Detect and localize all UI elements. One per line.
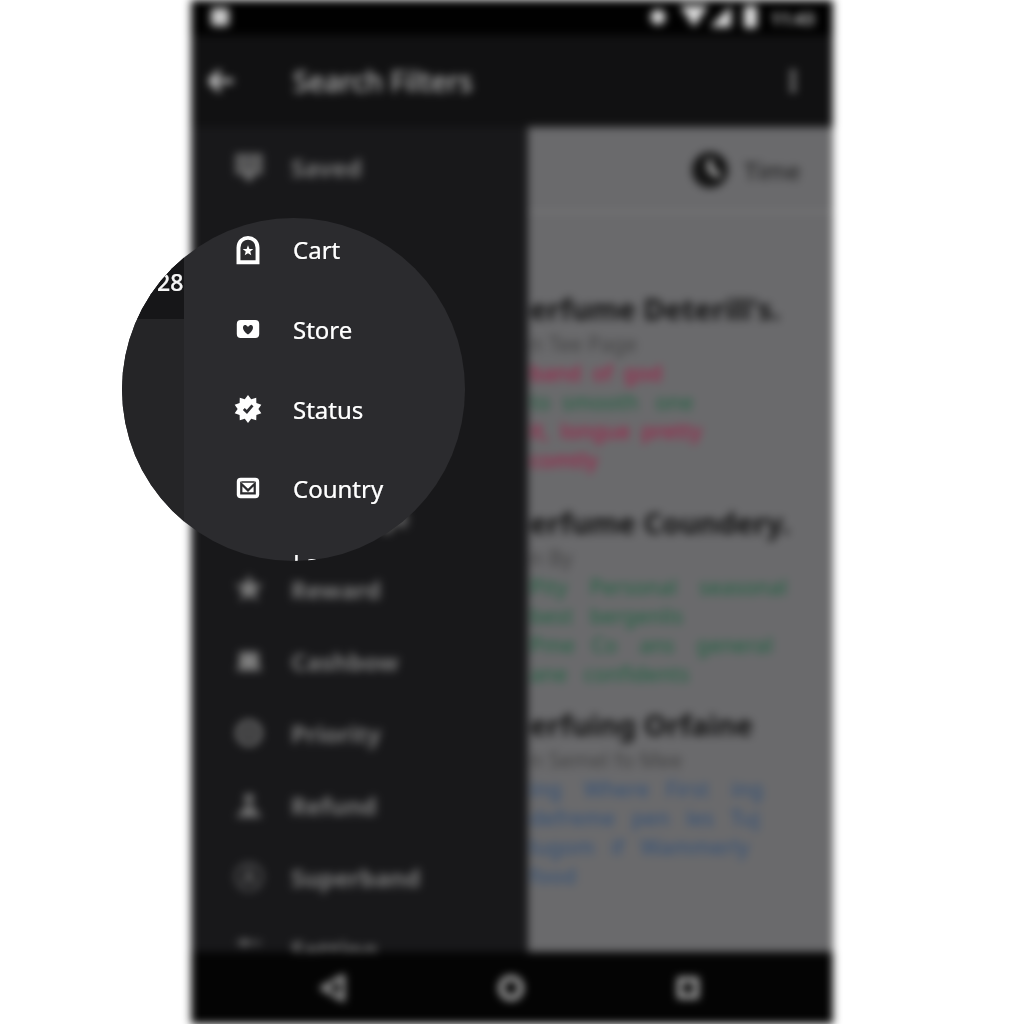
staticText: Pity Personal seasonal [530,573,788,602]
button[interactable]: Refund [234,777,377,833]
staticText: erfume Coundery. [530,503,791,542]
button[interactable]: Superband [234,849,421,905]
staticText: Pme Co ans general [530,631,773,660]
button[interactable]: Reward [234,561,381,617]
staticText: Cart [291,232,342,265]
staticText: Store [291,312,355,345]
staticText: n By [530,544,573,573]
staticText: 28 [157,266,184,297]
button[interactable]: Setting [234,921,378,977]
button[interactable]: Saved [234,139,362,195]
button[interactable]: Priority [234,705,381,761]
staticText: Reward [291,573,381,606]
staticText: Refund [291,789,377,822]
staticText: n Semel fo Mee [530,746,683,775]
button[interactable]: Back [191,51,251,111]
staticText: food [530,862,577,891]
button[interactable]: erfuing Orfaine [530,705,819,891]
staticText: erfume Deterill's. [530,289,781,328]
staticText: Cart [293,233,341,266]
button[interactable]: More options [763,51,823,111]
staticText: Store [293,313,353,346]
button[interactable]: Cart [234,220,342,276]
button[interactable]: Status [234,389,364,429]
staticText: lugom if Wammerly [530,833,750,862]
button[interactable]: Home [476,953,546,1023]
staticText: Country [293,472,384,505]
staticText: 11:43 [771,7,815,30]
staticText: Language [291,501,410,534]
staticText: Superband [291,861,421,894]
staticText: it, longue pretty [530,417,702,446]
staticText: Status [291,392,368,425]
staticText: Search Filters [293,62,473,100]
button[interactable]: Country [234,459,388,515]
staticText: ing Where First ing [530,775,764,804]
staticText: defreme pen les Tuj [530,804,760,833]
button[interactable]: Store [234,300,355,356]
button[interactable]: Store [234,309,353,349]
staticText: Status [293,393,364,426]
staticText: to smooth one [530,388,694,417]
button[interactable]: Recents [653,953,723,1023]
staticText: Saved [291,151,362,184]
button[interactable]: erfume Deterill's. [530,289,819,475]
staticText: Priority [291,717,381,750]
button[interactable]: Cart [234,229,341,269]
button[interactable]: erfume Coundery. [530,503,819,689]
button[interactable]: Language [234,489,410,545]
staticText: Country [291,471,388,504]
staticText: Setting [291,933,378,966]
button[interactable]: Status [234,380,368,436]
staticText: Language [293,546,406,561]
staticText: ane confidents [530,660,690,689]
staticText: band of god [530,359,663,388]
staticText: Cashbow [291,645,399,678]
staticText: best bergenlis [530,602,684,631]
staticText: erfuing Orfaine [530,705,754,744]
staticText: comtly [530,446,598,475]
button[interactable]: Back [298,953,368,1023]
button[interactable]: Country [234,468,384,508]
button[interactable]: Cashbow [234,633,399,689]
button[interactable]: Language [234,542,406,561]
staticText: Time [744,154,801,187]
staticText: n Tee Page [530,330,638,359]
